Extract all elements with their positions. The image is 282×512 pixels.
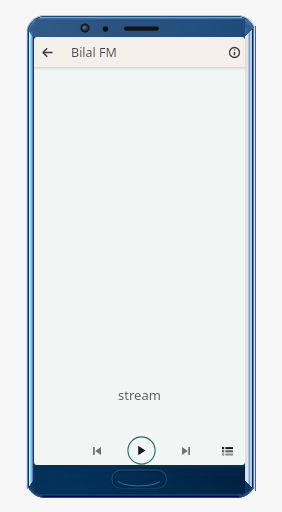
staticText: stream (34, 386, 245, 404)
button[interactable]: Previous (84, 438, 109, 463)
button[interactable]: Play (126, 435, 156, 465)
staticText: Bilal FM (71, 44, 117, 61)
button[interactable]: Next (173, 438, 198, 463)
button[interactable]: Info (223, 37, 245, 67)
button[interactable]: Back (34, 37, 60, 67)
button[interactable]: Playlist (215, 438, 240, 463)
